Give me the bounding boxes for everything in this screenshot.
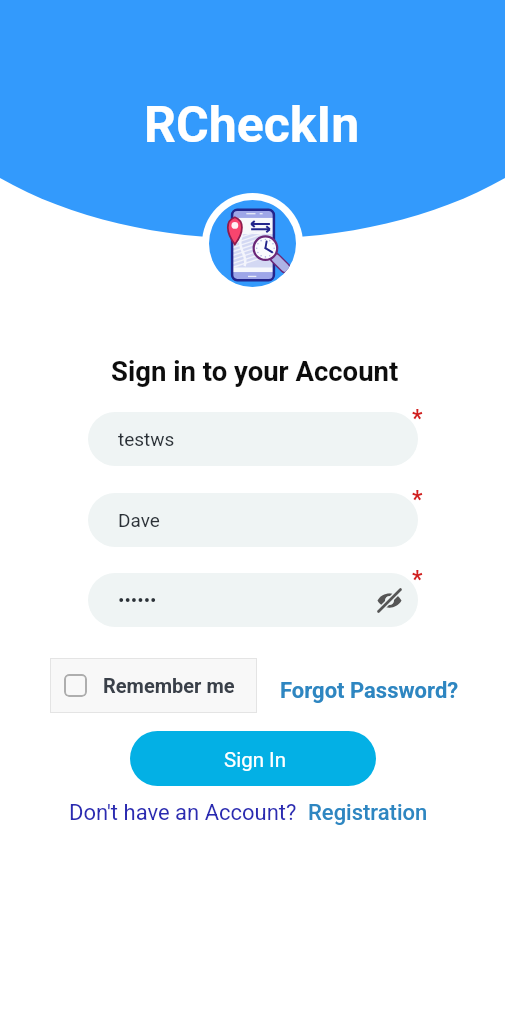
staticText: Sign In bbox=[224, 748, 286, 772]
staticText: Dave bbox=[118, 509, 160, 531]
staticText: Sign in to your Account bbox=[111, 355, 399, 387]
staticText: testws bbox=[118, 428, 175, 450]
staticText: Forgot Password? bbox=[280, 678, 459, 704]
staticText: •••••• bbox=[118, 589, 157, 611]
button[interactable]: Don't have an Account? bbox=[69, 800, 297, 826]
staticText: Remember me bbox=[103, 674, 235, 697]
staticText: Registration bbox=[308, 800, 428, 826]
staticText: RCheckIn bbox=[144, 96, 360, 155]
staticText: * bbox=[412, 566, 423, 593]
button[interactable]: Dave bbox=[88, 493, 418, 547]
button[interactable]: Remember me bbox=[50, 658, 257, 713]
button[interactable]: Toggle password visibility bbox=[373, 584, 405, 616]
button[interactable]: testws bbox=[88, 412, 418, 466]
button[interactable]: Registration bbox=[308, 800, 428, 826]
button[interactable]: •••••• bbox=[88, 573, 418, 627]
other: RCheckIn logo bbox=[209, 200, 296, 287]
button[interactable]: Sign In bbox=[130, 731, 376, 786]
staticText: * bbox=[412, 486, 423, 513]
staticText: * bbox=[412, 405, 423, 432]
button[interactable]: Forgot Password? bbox=[280, 678, 459, 704]
staticText: Don't have an Account? bbox=[69, 800, 297, 826]
